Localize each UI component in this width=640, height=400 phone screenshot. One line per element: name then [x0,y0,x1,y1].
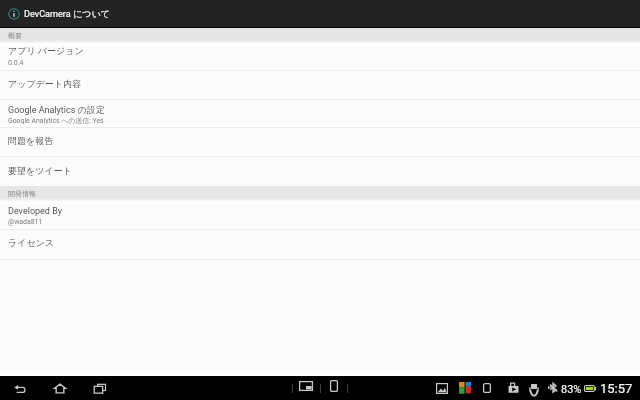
button[interactable]: ライセンス [0,230,640,256]
staticText: アップデート内容 [8,78,82,89]
other: App [459,382,471,394]
staticText: 15:57 [600,381,633,396]
other: Phone [483,383,491,393]
staticText: Developed By [8,206,63,217]
staticText: 0.0.4 [8,59,24,67]
staticText: 83% [561,383,582,396]
staticText: 問題を報告 [8,135,54,146]
button[interactable]: 問題を報告 [0,128,640,153]
staticText: @wada811 [8,218,43,226]
other: Gallery [436,383,448,394]
staticText: 概要 [8,31,22,40]
button[interactable]: Google Analytics の設定 [0,100,640,124]
button[interactable]: Recent apps [85,376,115,400]
other: Screenshot [299,381,313,391]
other: Battery 83 percent [584,385,596,392]
staticText: Google Analytics への送信: Yes [8,116,104,125]
button[interactable]: Developed By [0,204,640,226]
staticText: ライセンス [8,237,55,248]
button[interactable]: アプリ バージョン [0,46,640,67]
other: Store [508,382,519,393]
staticText: 要望をツイート [8,165,72,176]
button[interactable]: アップデート内容 [0,71,640,96]
other: Android Beam [529,384,539,393]
staticText: Google Analytics の設定 [8,104,105,115]
staticText: 開発情報 [8,189,36,198]
other: Bluetooth off [548,382,559,393]
staticText: DevCamera について [24,8,111,19]
other: Device [330,380,338,392]
staticText: アプリ バージョン [8,45,84,56]
button[interactable]: Home [45,376,75,400]
button[interactable]: 要望をツイート [0,157,640,186]
button[interactable]: Back [5,376,35,400]
button[interactable]: DevCamera について [0,0,640,28]
